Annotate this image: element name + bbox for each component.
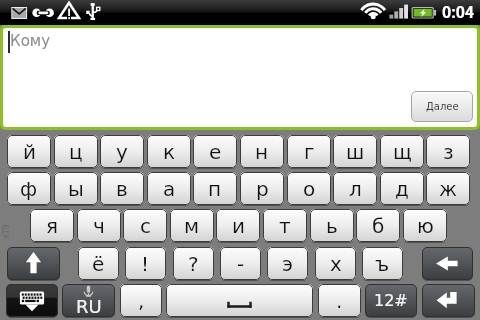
staticText: xT9: [2, 224, 11, 239]
button[interactable]: х: [315, 247, 356, 280]
staticText: ч: [93, 214, 105, 237]
button[interactable]: с: [123, 209, 167, 242]
staticText: 0:04: [442, 3, 475, 22]
button[interactable]: ё: [78, 247, 119, 280]
button[interactable]: р: [240, 172, 284, 205]
staticText: ы: [68, 177, 84, 200]
staticText: й: [23, 140, 36, 163]
staticText: в: [116, 177, 128, 200]
staticText: ь: [326, 214, 338, 237]
staticText: л: [349, 177, 362, 200]
button[interactable]: е: [193, 135, 237, 168]
button[interactable]: я: [30, 209, 74, 242]
button[interactable]: й: [7, 135, 51, 168]
button[interactable]: Enter: [422, 284, 475, 317]
button[interactable]: .: [318, 284, 361, 317]
button[interactable]: к: [147, 135, 191, 168]
button[interactable]: Далее: [411, 91, 473, 122]
button[interactable]: м: [170, 209, 214, 242]
button[interactable]: д: [380, 172, 424, 205]
staticText: д: [395, 177, 409, 200]
button[interactable]: з: [426, 135, 470, 168]
staticText: с: [140, 214, 151, 237]
button[interactable]: -: [220, 247, 261, 280]
staticText: ?: [188, 252, 199, 275]
staticText: ,: [138, 289, 145, 312]
staticText: е: [209, 140, 222, 163]
staticText: а: [163, 177, 176, 200]
staticText: -: [237, 252, 245, 275]
button[interactable]: [166, 284, 313, 317]
button[interactable]: о: [287, 172, 331, 205]
button[interactable]: Shift: [7, 247, 60, 280]
staticText: щ: [393, 140, 412, 163]
button[interactable]: ,: [120, 284, 162, 317]
button[interactable]: у: [100, 135, 144, 168]
button[interactable]: ы: [54, 172, 98, 205]
button[interactable]: ш: [333, 135, 377, 168]
button[interactable]: а: [147, 172, 191, 205]
staticText: я: [46, 214, 59, 237]
staticText: !: [141, 252, 150, 275]
button[interactable]: т: [263, 209, 307, 242]
staticText: и: [232, 214, 245, 237]
other: xT9: [0, 223, 12, 241]
staticText: э: [282, 252, 293, 275]
staticText: ф: [20, 177, 38, 200]
staticText: т: [279, 214, 291, 237]
button[interactable]: Hide keyboard: [6, 284, 58, 317]
button[interactable]: э: [267, 247, 308, 280]
button[interactable]: щ: [380, 135, 424, 168]
button[interactable]: и: [216, 209, 260, 242]
button[interactable]: н: [240, 135, 284, 168]
button[interactable]: ь: [310, 209, 354, 242]
staticText: .: [336, 289, 343, 312]
staticText: г: [304, 140, 315, 163]
button[interactable]: 12#: [365, 284, 417, 317]
button[interactable]: ю: [403, 209, 447, 242]
button[interactable]: л: [333, 172, 377, 205]
staticText: б: [372, 214, 385, 237]
staticText: ж: [439, 177, 458, 200]
staticText: RU: [76, 296, 102, 317]
button[interactable]: Voice input, RU: [62, 284, 115, 317]
button[interactable]: ?: [173, 247, 214, 280]
staticText: ю: [417, 214, 434, 237]
staticText: ъ: [375, 252, 390, 275]
staticText: Кому: [10, 32, 51, 49]
button[interactable]: г: [287, 135, 331, 168]
button[interactable]: ф: [7, 172, 51, 205]
button[interactable]: Кому: [3, 28, 477, 127]
staticText: у: [116, 140, 128, 163]
staticText: ё: [92, 252, 105, 275]
button[interactable]: ц: [54, 135, 98, 168]
staticText: з: [443, 140, 454, 163]
staticText: Далее: [426, 101, 459, 113]
button[interactable]: в: [100, 172, 144, 205]
button[interactable]: Backspace: [422, 247, 473, 280]
button[interactable]: ж: [426, 172, 470, 205]
button[interactable]: !: [125, 247, 166, 280]
staticText: х: [330, 252, 342, 275]
button[interactable]: ч: [77, 209, 121, 242]
staticText: п: [208, 177, 222, 200]
staticText: р: [256, 177, 269, 200]
staticText: 12#: [374, 291, 408, 310]
staticText: к: [163, 140, 176, 163]
button[interactable]: ъ: [362, 247, 403, 280]
staticText: ш: [346, 140, 365, 163]
button[interactable]: б: [356, 209, 400, 242]
button[interactable]: п: [193, 172, 237, 205]
staticText: о: [303, 177, 316, 200]
staticText: ц: [69, 140, 83, 163]
staticText: м: [184, 214, 200, 237]
staticText: н: [255, 140, 269, 163]
